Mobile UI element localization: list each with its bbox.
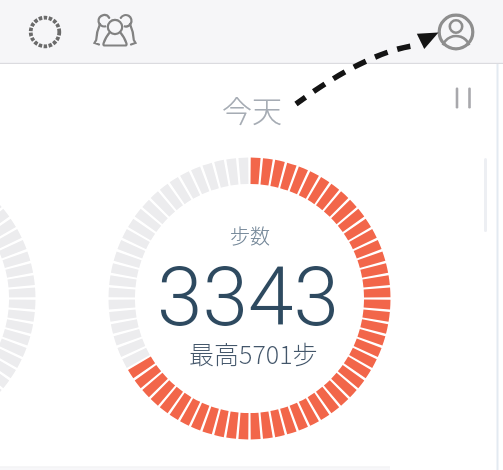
button[interactable]	[27, 14, 63, 50]
staticText: 3343	[157, 249, 339, 345]
button[interactable]	[436, 12, 476, 52]
staticText: 最高5701步	[189, 335, 318, 371]
button[interactable]	[93, 10, 137, 54]
staticText: 步数	[230, 221, 270, 250]
staticText: 今天	[222, 87, 282, 130]
button[interactable]	[449, 84, 477, 112]
